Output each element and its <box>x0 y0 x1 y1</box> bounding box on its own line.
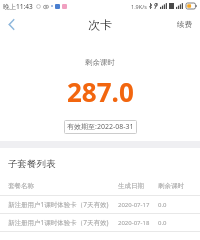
staticText: 生成日期 <box>118 182 158 190</box>
staticText: 1.9K/s <box>131 3 147 10</box>
staticText: 剩余课时 <box>158 182 192 190</box>
button[interactable]: 新注册用户1课时体验卡（7天有效) <box>0 214 200 231</box>
staticText: 有效期至:2022-08-31 <box>67 122 134 132</box>
staticText: 287.0 <box>67 74 134 109</box>
staticText: 续费 <box>177 20 192 29</box>
staticText: 子套餐列表 <box>8 158 56 170</box>
staticText: 0.0 <box>158 219 192 227</box>
button[interactable]: Back <box>0 13 22 35</box>
staticText: 2020-07-17 <box>118 201 158 209</box>
button[interactable]: 续费 <box>169 16 200 33</box>
staticText: 2020-07-18 <box>118 219 158 227</box>
staticText: 晚上11:43 <box>3 2 33 11</box>
staticText: 剩余课时 <box>85 58 115 67</box>
staticText: 0.0 <box>158 201 192 209</box>
button[interactable]: 新注册用户1课时体验卡（7天有效) <box>0 196 200 213</box>
staticText: 新注册用户1课时体验卡（7天有效) <box>8 200 114 209</box>
staticText: 新注册用户1课时体验卡（7天有效) <box>8 218 114 227</box>
staticText: 套餐名称 <box>8 182 118 190</box>
staticText: 次卡 <box>88 17 112 32</box>
